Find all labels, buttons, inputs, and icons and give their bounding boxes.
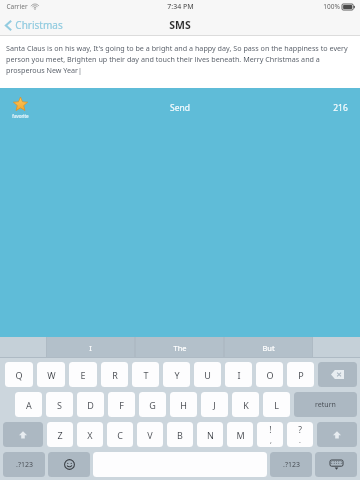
button[interactable]: A — [15, 392, 42, 417]
staticText: O — [266, 369, 274, 381]
button[interactable]: X — [77, 422, 103, 447]
staticText: W — [47, 369, 56, 381]
staticText: M — [236, 429, 245, 441]
staticText: favorite — [12, 113, 29, 119]
staticText: . — [299, 436, 301, 446]
button[interactable]: return — [294, 392, 357, 417]
staticText: R — [112, 369, 118, 381]
staticText: B — [177, 429, 183, 441]
button[interactable]: B — [167, 422, 193, 447]
button[interactable]: O — [256, 362, 283, 387]
button[interactable]: ? — [287, 422, 313, 447]
staticText: ? — [298, 424, 302, 436]
staticText: S — [57, 399, 62, 411]
button[interactable]: Shift — [317, 422, 357, 447]
staticText: X — [87, 429, 93, 441]
staticText: L — [274, 399, 279, 411]
button[interactable]: W — [37, 362, 65, 387]
button[interactable]: F — [108, 392, 135, 417]
button[interactable]: Send — [156, 97, 204, 119]
staticText: Y — [174, 369, 180, 381]
button[interactable]: K — [232, 392, 259, 417]
button[interactable]: Backspace — [318, 362, 357, 387]
staticText: I — [89, 343, 92, 353]
button[interactable]: Favorite — [8, 95, 33, 121]
staticText: 7:34 PM — [167, 2, 194, 12]
staticText: 100% — [323, 2, 340, 11]
staticText: ! — [269, 424, 272, 436]
staticText: G — [149, 399, 156, 411]
staticText: T — [143, 369, 149, 381]
staticText: Santa Claus is on his way, It's going to… — [6, 43, 354, 75]
staticText: .?123 — [16, 460, 33, 470]
button[interactable]: I — [225, 362, 252, 387]
staticText: P — [298, 369, 304, 381]
button[interactable]: Emoji — [48, 452, 90, 477]
button[interactable]: Shift — [3, 422, 43, 447]
staticText: F — [119, 399, 124, 411]
staticText: The — [173, 343, 187, 353]
button[interactable]: Y — [163, 362, 190, 387]
button[interactable]: Z — [47, 422, 73, 447]
button[interactable]: T — [132, 362, 159, 387]
button[interactable]: R — [101, 362, 128, 387]
staticText: V — [147, 429, 153, 441]
staticText: J — [213, 399, 216, 411]
staticText: Send — [170, 102, 190, 114]
staticText: I — [237, 369, 241, 381]
button[interactable]: E — [69, 362, 97, 387]
staticText: Christmas — [15, 18, 63, 32]
button[interactable]: D — [77, 392, 104, 417]
staticText: Q — [15, 369, 23, 381]
staticText: 216 — [333, 102, 348, 114]
staticText: D — [87, 399, 94, 411]
button[interactable]: Hide keyboard — [315, 452, 357, 477]
staticText: return — [315, 400, 336, 410]
staticText: H — [180, 399, 187, 411]
staticText: E — [80, 369, 86, 381]
staticText: C — [117, 429, 123, 441]
button[interactable]: M — [227, 422, 253, 447]
button[interactable]: S — [46, 392, 73, 417]
button[interactable]: Q — [5, 362, 33, 387]
button[interactable]: .?123 — [270, 452, 312, 477]
button[interactable]: H — [170, 392, 197, 417]
staticText: SMS — [169, 18, 191, 32]
button[interactable]: N — [197, 422, 223, 447]
button[interactable]: G — [139, 392, 166, 417]
staticText: Carrier — [6, 2, 28, 11]
staticText: , — [270, 436, 272, 446]
button[interactable]: ! — [257, 422, 283, 447]
button[interactable]: The — [135, 337, 224, 358]
button[interactable]: P — [287, 362, 314, 387]
button[interactable]: C — [107, 422, 133, 447]
button[interactable]: U — [194, 362, 221, 387]
staticText: K — [243, 399, 249, 411]
button[interactable]: Santa Claus is on his way, It's going to… — [0, 36, 360, 88]
staticText: .?123 — [283, 460, 300, 470]
button[interactable]: .?123 — [3, 452, 45, 477]
button[interactable]: L — [263, 392, 290, 417]
staticText: U — [204, 369, 211, 381]
staticText: But — [262, 343, 275, 353]
button[interactable]: I — [46, 337, 135, 358]
staticText: A — [26, 399, 32, 411]
button[interactable]: V — [137, 422, 163, 447]
button[interactable]: J — [201, 392, 228, 417]
staticText: N — [207, 429, 214, 441]
button[interactable]: But — [224, 337, 313, 358]
button[interactable]: Christmas — [0, 15, 71, 35]
staticText: Z — [57, 429, 63, 441]
